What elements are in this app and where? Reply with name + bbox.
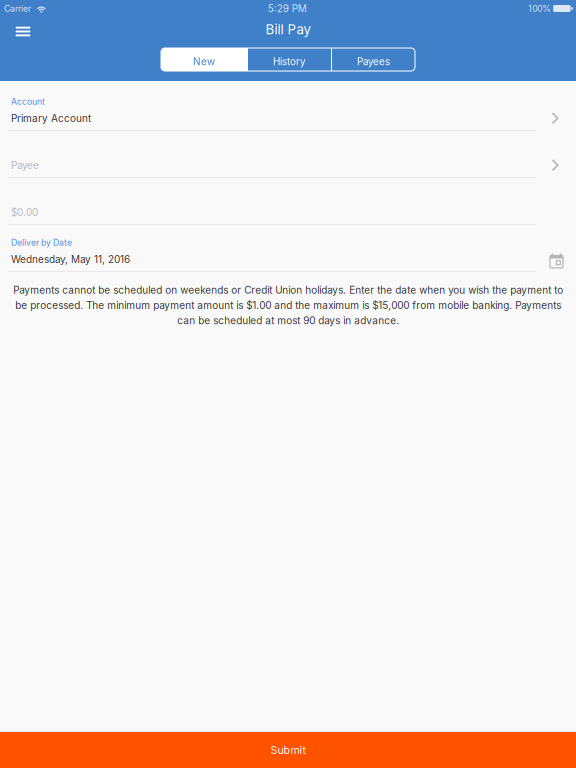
- staticText: $0.00: [11, 206, 38, 218]
- staticText: Payments cannot be scheduled on weekends…: [13, 284, 563, 327]
- staticText: Wednesday, May 11, 2016: [11, 253, 130, 265]
- staticText: Payee: [11, 159, 39, 171]
- button[interactable]: Payee: [0, 131, 576, 178]
- button[interactable]: Deliver by Date: [0, 225, 576, 272]
- button[interactable]: Submit: [0, 732, 576, 768]
- staticText: Primary Account: [11, 112, 91, 124]
- staticText: 5:29 PM: [268, 2, 307, 15]
- staticText: Payees: [357, 55, 390, 68]
- staticText: Submit: [270, 743, 305, 756]
- staticText: History: [273, 55, 306, 68]
- staticText: Account: [11, 96, 45, 107]
- button[interactable]: Menu: [4, 16, 42, 43]
- button[interactable]: Account: [0, 84, 576, 131]
- staticText: Bill Pay: [265, 21, 310, 37]
- staticText: Carrier: [4, 3, 31, 14]
- staticText: Deliver by Date: [11, 237, 72, 248]
- button[interactable]: History: [248, 48, 331, 71]
- button[interactable]: Payees: [332, 48, 415, 71]
- staticText: New: [193, 55, 215, 68]
- button[interactable]: New: [161, 48, 247, 71]
- staticText: 100%: [528, 3, 551, 14]
